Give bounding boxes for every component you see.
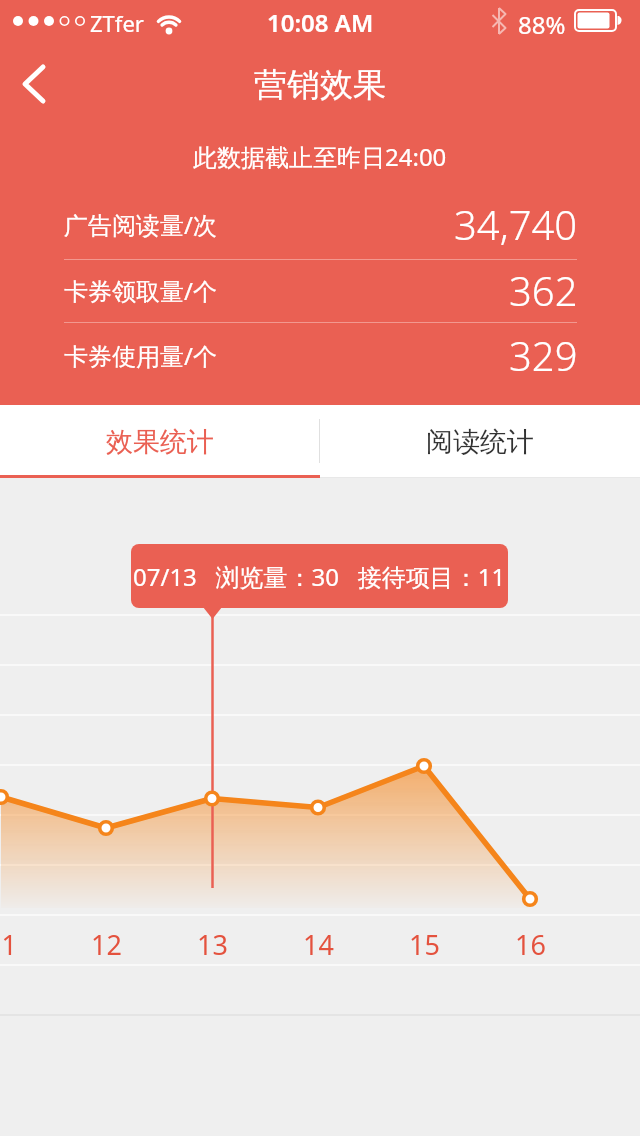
staticText: 16	[515, 926, 546, 962]
staticText: 362	[509, 263, 578, 317]
staticText: 329	[509, 328, 578, 382]
staticText: 11	[0, 926, 17, 962]
staticText: 13	[197, 926, 228, 962]
button[interactable]: 07/13 浏览量：30 接待项目：11	[131, 544, 508, 608]
button[interactable]: 效果统计	[0, 405, 320, 478]
staticText: 阅读统计	[426, 425, 534, 459]
staticText: 34,740	[454, 197, 578, 251]
button[interactable]: 阅读统计	[320, 405, 640, 478]
button[interactable]: 卡券使用量/个	[64, 321, 578, 389]
button[interactable]: 广告阅读量/次	[64, 189, 578, 259]
staticText: 07/13 浏览量：30 接待项目：11	[133, 560, 506, 593]
staticText: 14	[303, 926, 334, 962]
staticText: 88%	[518, 8, 566, 41]
staticText: ZTfer	[90, 8, 144, 38]
button[interactable]: 卡券领取量/个	[64, 256, 578, 324]
staticText: 卡券领取量/个	[64, 274, 217, 307]
staticText: 此数据截止至昨日24:00	[193, 140, 447, 173]
staticText: 12	[91, 926, 122, 962]
staticText: 效果统计	[106, 425, 214, 459]
staticText: 卡券使用量/个	[64, 339, 217, 372]
staticText: 广告阅读量/次	[64, 208, 217, 241]
staticText: 10:08 AM	[267, 6, 374, 38]
staticText: 营销效果	[254, 64, 386, 106]
staticText: 15	[409, 926, 440, 962]
button[interactable]	[10, 60, 58, 108]
